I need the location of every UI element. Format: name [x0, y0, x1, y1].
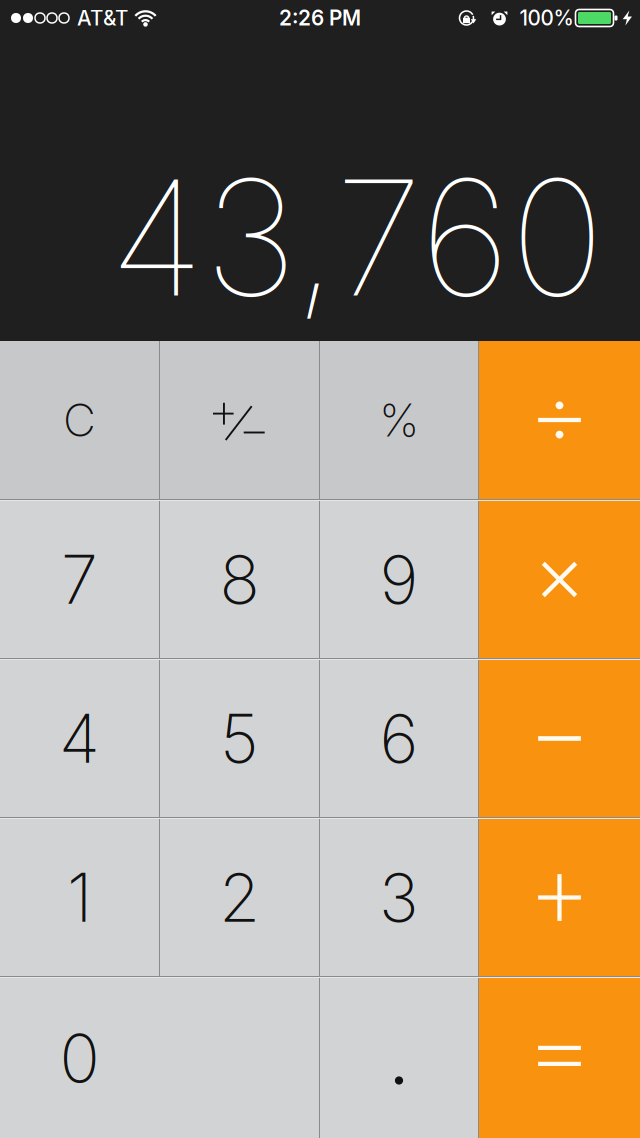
staticText: 43,760 [109, 140, 605, 334]
staticText: 9 [379, 539, 418, 620]
button[interactable]: Decimal point [320, 978, 478, 1138]
staticText: 3 [379, 857, 419, 938]
button[interactable]: Multiply [479, 501, 640, 658]
button[interactable]: 7 [0, 501, 159, 658]
button[interactable]: 1 [0, 819, 159, 976]
button[interactable]: Divide [479, 341, 640, 499]
button[interactable]: 2 [160, 819, 319, 976]
staticText: 4 [59, 698, 100, 779]
button[interactable]: 5 [160, 660, 319, 817]
staticText: 7 [61, 539, 98, 620]
staticText: 1 [67, 857, 92, 938]
button[interactable]: 3 [320, 819, 478, 976]
staticText: 5 [220, 698, 259, 779]
staticText: 2 [219, 857, 260, 938]
button[interactable]: Subtract [479, 660, 640, 817]
button[interactable]: 0 [0, 978, 319, 1138]
button[interactable]: C [0, 341, 159, 499]
button[interactable]: Toggle sign [160, 341, 319, 499]
staticText: 100% [519, 5, 573, 30]
button[interactable]: 9 [320, 501, 478, 658]
staticText: % [379, 393, 419, 447]
staticText: C [63, 393, 96, 447]
staticText: 2:26 PM [279, 5, 361, 31]
button[interactable]: Equals [479, 978, 640, 1138]
button[interactable]: 4 [0, 660, 159, 817]
staticText: 6 [379, 698, 418, 779]
staticText: 8 [219, 539, 259, 620]
staticText: 0 [59, 1018, 99, 1098]
button[interactable]: 8 [160, 501, 319, 658]
staticText: AT&T [77, 5, 128, 30]
button[interactable]: 6 [320, 660, 478, 817]
button[interactable]: % [320, 341, 478, 499]
button[interactable]: Add [479, 819, 640, 976]
